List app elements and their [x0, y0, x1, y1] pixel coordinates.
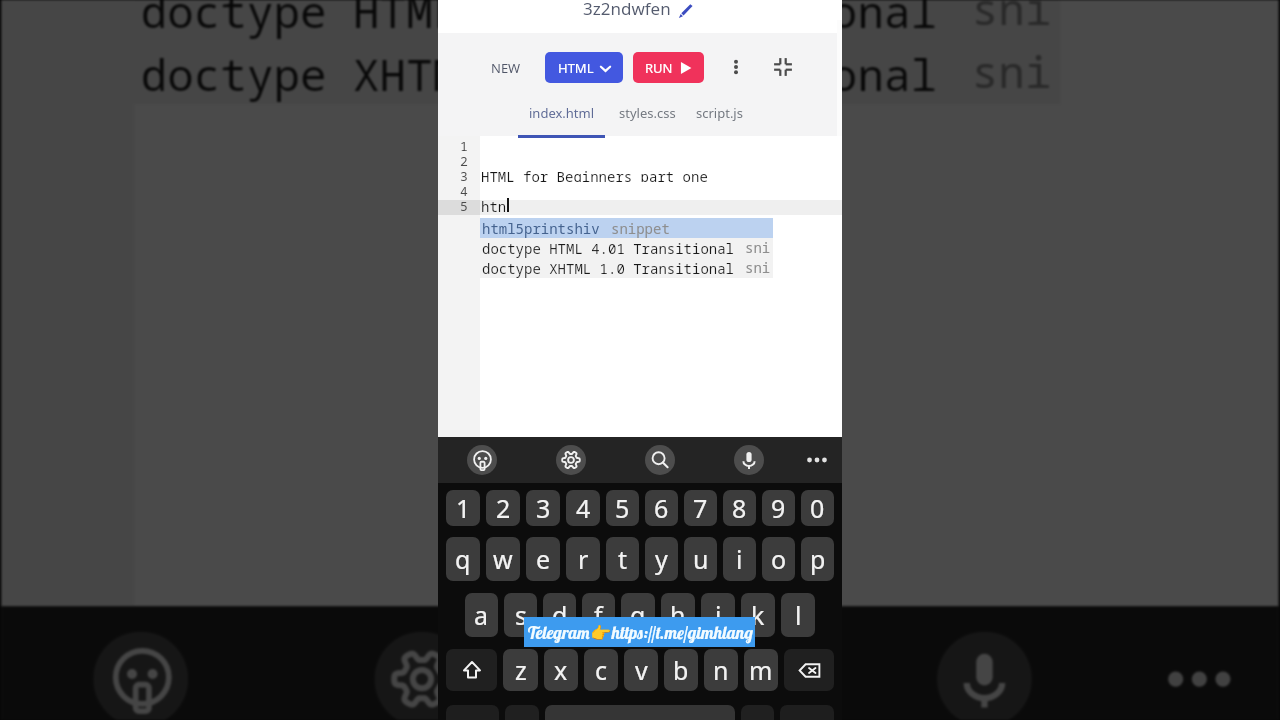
- button[interactable]: NEW: [486, 55, 526, 81]
- button[interactable]: Period: [741, 705, 774, 720]
- button[interactable]: m: [744, 649, 778, 691]
- button[interactable]: 5: [606, 490, 639, 526]
- button[interactable]: doctype XHTML 1.0 Transitional: [134, 41, 1060, 104]
- staticText: c: [595, 653, 608, 687]
- button[interactable]: Exit full screen: [768, 52, 798, 82]
- button[interactable]: v: [624, 649, 658, 691]
- button[interactable]: Keyboard settings: [375, 632, 469, 720]
- button[interactable]: Emoji: [467, 445, 497, 475]
- button[interactable]: 9: [762, 490, 795, 526]
- staticText: n: [713, 653, 729, 687]
- staticText: 2: [496, 491, 511, 525]
- button[interactable]: o: [762, 537, 795, 581]
- button[interactable]: 0: [801, 490, 834, 526]
- staticText: t: [618, 542, 628, 576]
- button[interactable]: t: [606, 537, 639, 581]
- button[interactable]: script.js: [689, 104, 749, 135]
- staticText: d: [552, 598, 568, 632]
- button[interactable]: Keyboard settings: [556, 445, 586, 475]
- button[interactable]: index.html: [518, 104, 605, 138]
- staticText: doctype XHTML 1.0 Transitional: [482, 259, 734, 278]
- button[interactable]: 6: [645, 490, 678, 526]
- staticText: p: [810, 542, 826, 576]
- staticText: m: [749, 653, 773, 687]
- button[interactable]: doctype HTML 4.01 Transitional: [480, 238, 773, 258]
- staticText: snip: [745, 258, 773, 278]
- staticText: b: [673, 653, 689, 687]
- button[interactable]: e: [526, 537, 560, 581]
- button[interactable]: 4: [566, 490, 600, 526]
- staticText: j: [715, 598, 722, 632]
- button[interactable]: More: [802, 445, 832, 475]
- button[interactable]: Telegram👉https://t.me/gimhlang: [524, 617, 755, 647]
- button[interactable]: b: [664, 649, 698, 691]
- button[interactable]: 8: [723, 490, 756, 526]
- staticText: script.js: [696, 104, 743, 122]
- button[interactable]: r: [566, 537, 600, 581]
- button[interactable]: k: [741, 593, 775, 637]
- button[interactable]: d: [543, 593, 576, 637]
- button[interactable]: q: [446, 537, 480, 581]
- button[interactable]: z: [503, 649, 538, 691]
- staticText: y: [655, 542, 668, 576]
- button[interactable]: x: [544, 649, 578, 691]
- button[interactable]: s: [504, 593, 537, 637]
- staticText: 2: [460, 152, 468, 167]
- button[interactable]: Backspace: [784, 649, 834, 691]
- button[interactable]: c: [584, 649, 618, 691]
- staticText: 5: [460, 197, 468, 212]
- staticText: s: [515, 598, 527, 632]
- staticText: v: [635, 653, 648, 687]
- button[interactable]: Shift: [446, 649, 497, 691]
- staticText: 3: [536, 491, 551, 525]
- button[interactable]: html5printshiv: [480, 218, 773, 238]
- button[interactable]: doctype HTML 4.01 Transitional: [134, 0, 1060, 41]
- button[interactable]: Emoji: [93, 632, 188, 720]
- button[interactable]: 2: [486, 490, 520, 526]
- button[interactable]: 1: [446, 490, 480, 526]
- staticText: x: [554, 653, 568, 687]
- button[interactable]: u: [684, 537, 717, 581]
- button[interactable]: styles.css: [614, 104, 681, 135]
- staticText: 6: [654, 491, 669, 525]
- button[interactable]: g: [621, 593, 655, 637]
- staticText: 5: [615, 491, 630, 525]
- button[interactable]: Voice input: [937, 632, 1032, 720]
- button[interactable]: 3: [526, 490, 560, 526]
- button[interactable]: Search: [656, 632, 751, 720]
- button[interactable]: l: [781, 593, 815, 637]
- button[interactable]: Search: [645, 445, 675, 475]
- staticText: z: [515, 653, 527, 687]
- button[interactable]: f: [582, 593, 615, 637]
- staticText: h: [670, 598, 686, 632]
- button[interactable]: h: [661, 593, 695, 637]
- button[interactable]: More options: [721, 52, 751, 82]
- staticText: doctype XHTML 1.0 Transitional: [141, 44, 937, 104]
- button[interactable]: Space: [545, 705, 735, 720]
- button[interactable]: Comma: [505, 705, 539, 720]
- button[interactable]: w: [486, 537, 520, 581]
- button[interactable]: HTML: [545, 52, 623, 83]
- button[interactable]: More: [1152, 632, 1247, 720]
- staticText: r: [578, 542, 589, 576]
- button[interactable]: p: [801, 537, 834, 581]
- button[interactable]: Voice input: [734, 445, 764, 475]
- staticText: 9: [771, 491, 786, 525]
- staticText: 1: [456, 491, 471, 525]
- staticText: 7: [693, 491, 708, 525]
- staticText: NEW: [491, 59, 521, 77]
- staticText: 3z2ndwfen: [583, 0, 671, 20]
- button[interactable]: y: [645, 537, 678, 581]
- button[interactable]: j: [701, 593, 735, 637]
- button[interactable]: n: [704, 649, 738, 691]
- staticText: e: [536, 542, 551, 576]
- staticText: f: [594, 598, 603, 632]
- button[interactable]: RUN: [633, 52, 704, 83]
- button[interactable]: doctype XHTML 1.0 Transitional: [480, 258, 773, 278]
- button[interactable]: a: [465, 593, 498, 637]
- button[interactable]: i: [723, 537, 756, 581]
- button[interactable]: 7: [684, 490, 717, 526]
- button[interactable]: Rename project: [678, 4, 693, 19]
